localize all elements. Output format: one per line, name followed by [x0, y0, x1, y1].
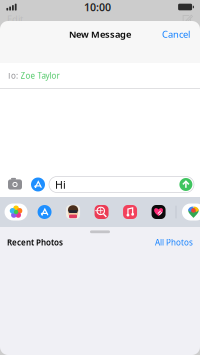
staticText: 10:00 [84, 0, 111, 14]
button[interactable]: App Store [27, 172, 49, 197]
staticText: Hi [55, 177, 66, 192]
button[interactable]: Camera [3, 172, 27, 197]
staticText: Zoe Taylor [20, 70, 59, 81]
staticText: All Photos [155, 237, 193, 248]
button[interactable]: Send [179, 178, 192, 191]
button[interactable]: Digital Touch [144, 197, 173, 227]
button[interactable]: Images [87, 197, 116, 227]
staticText: To: [7, 70, 18, 81]
staticText: New Message [69, 28, 131, 40]
button[interactable]: Music [116, 197, 144, 227]
button[interactable]: Memoji [59, 197, 87, 227]
staticText: Cancel [162, 28, 190, 40]
button[interactable]: App Store [30, 197, 59, 227]
button[interactable]: Photos [2, 197, 30, 227]
staticText: Recent Photos [7, 237, 63, 248]
button[interactable]: Cancel [153, 14, 199, 70]
button[interactable]: Maps [179, 197, 200, 227]
button[interactable]: All Photos [155, 237, 193, 248]
staticText: Edit [7, 13, 23, 25]
